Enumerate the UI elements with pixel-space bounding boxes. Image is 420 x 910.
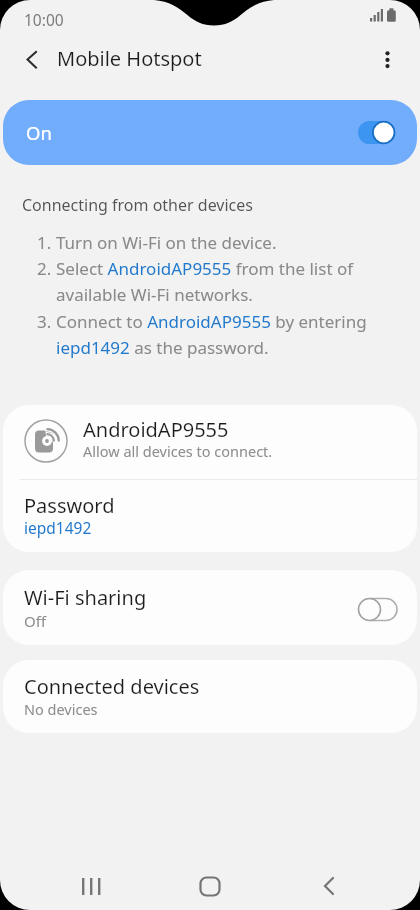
staticText: Password (24, 492, 115, 519)
staticText: Connecting from other devices (22, 194, 253, 216)
staticText: Wi-Fi sharing (24, 584, 147, 611)
staticText: No devices (24, 699, 98, 719)
staticText: Select AndroidAP9555 from the list of (56, 257, 354, 280)
staticText: available Wi-Fi networks. (56, 283, 253, 306)
button[interactable] (190, 866, 230, 906)
staticText: 1. (37, 231, 52, 254)
staticText: Mobile Hotspot (57, 45, 202, 72)
staticText: Turn on Wi-Fi on the device. (56, 231, 277, 254)
staticText: iepd1492 (24, 517, 92, 538)
button[interactable] (14, 47, 42, 75)
staticText: 10:00 (24, 9, 64, 30)
staticText: On (26, 120, 52, 145)
button[interactable] (71, 866, 111, 906)
button[interactable]: Wi-Fi sharing (3, 570, 417, 645)
button[interactable] (308, 866, 348, 906)
button[interactable]: Connected devices (3, 660, 417, 733)
button[interactable]: AndroidAP9555 (3, 405, 417, 479)
staticText: Connect to AndroidAP9555 by entering (56, 310, 367, 333)
button[interactable]: Password (3, 480, 417, 552)
staticText: AndroidAP9555 (83, 416, 229, 443)
staticText: Off (24, 611, 47, 631)
staticText: 3. (37, 310, 52, 333)
staticText: Connected devices (24, 673, 200, 700)
staticText: 2. (37, 257, 52, 280)
staticText: iepd1492 as the password. (56, 336, 269, 359)
staticText: Allow all devices to connect. (83, 441, 273, 461)
button[interactable]: On (3, 100, 417, 165)
button[interactable] (374, 46, 402, 74)
